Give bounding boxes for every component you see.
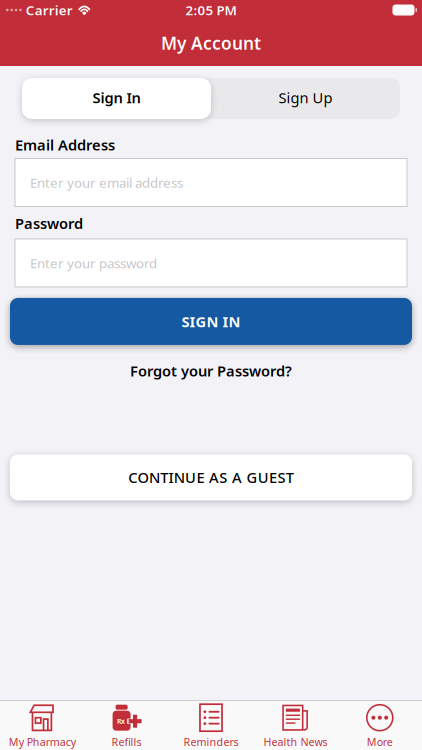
button[interactable]: More [338,704,422,749]
staticText: Health News [263,735,327,749]
button[interactable]: Rx [84,704,169,749]
button[interactable]: Reminders [169,704,253,749]
staticText: Sign In [92,88,140,107]
staticText: Carrier [26,1,73,19]
staticText: My Account [161,31,261,54]
staticText: Forgot your Password? [130,361,292,380]
button[interactable]: Sign Up [211,89,400,108]
button[interactable]: Sign In [22,78,211,119]
button[interactable]: Enter your email address [15,158,407,206]
button[interactable]: SIGN IN [10,298,412,345]
staticText: My Pharmacy [9,735,76,749]
staticText: Email Address [15,135,115,154]
button[interactable]: My Pharmacy [0,704,84,749]
button[interactable]: CONTINUE AS A GUEST [10,454,412,500]
staticText: Sign Up [278,88,332,107]
button[interactable]: Forgot your Password? [130,361,292,380]
staticText: More [367,735,393,749]
staticText: Enter your password [30,254,157,272]
staticText: Enter your email address [30,174,183,191]
staticText: 2:05 PM [185,1,236,19]
staticText: Refills [112,735,142,749]
staticText: Password [15,213,83,233]
staticText: Reminders [183,735,238,749]
button[interactable]: Enter your password [15,239,407,287]
staticText: Rx [117,717,125,726]
staticText: CONTINUE AS A GUEST [128,468,294,487]
button[interactable]: Health News [253,704,338,749]
staticText: SIGN IN [181,312,240,331]
